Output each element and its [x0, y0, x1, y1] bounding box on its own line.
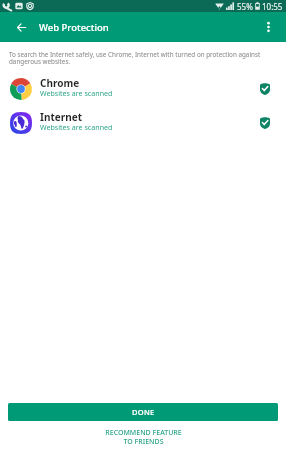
- button[interactable]: Chrome: [0, 73, 286, 105]
- button[interactable]: More options: [253, 12, 283, 42]
- staticText: 10:55: [262, 1, 283, 12]
- staticText: Chrome: [40, 76, 80, 90]
- staticText: RECOMMEND FEATURE TO FRIENDS: [105, 428, 182, 446]
- staticText: DONE: [132, 407, 155, 417]
- staticText: Web Protection: [39, 21, 109, 34]
- button[interactable]: Back: [0, 12, 34, 42]
- staticText: Websites are scanned: [40, 122, 113, 132]
- staticText: 55%: [237, 1, 253, 12]
- button[interactable]: DONE: [8, 403, 278, 421]
- staticText: Internet: [40, 110, 82, 124]
- staticText: Websites are scanned: [40, 88, 113, 98]
- staticText: To search the Internet safely, use Chrom…: [9, 50, 274, 66]
- button[interactable]: RECOMMEND FEATURE TO FRIENDS: [0, 428, 286, 446]
- button[interactable]: Internet: [0, 107, 286, 139]
